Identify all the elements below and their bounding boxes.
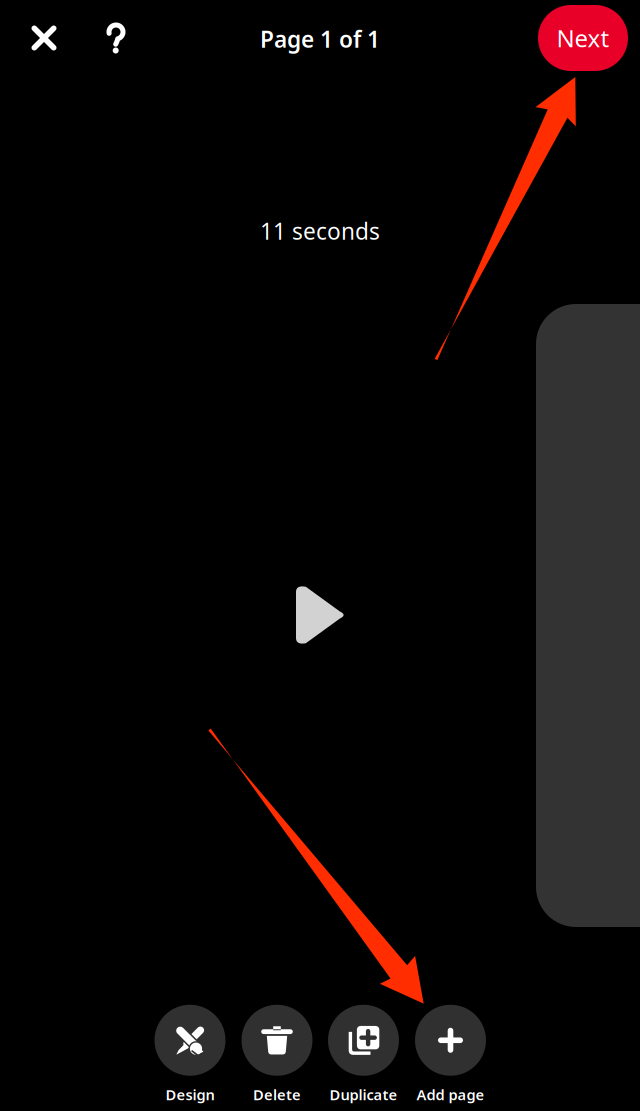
button[interactable]: Add page	[415, 1005, 486, 1104]
staticText: Page 1 of 1	[260, 24, 380, 54]
staticText: Duplicate	[329, 1085, 397, 1104]
staticText: Design	[165, 1085, 214, 1104]
button[interactable]: Duplicate	[328, 1005, 399, 1104]
staticText: Next	[556, 22, 609, 54]
staticText: 11 seconds	[260, 216, 380, 246]
staticText: Add page	[416, 1085, 484, 1104]
button[interactable]: Close	[13, 7, 75, 69]
staticText: Delete	[253, 1085, 301, 1104]
button[interactable]: Delete	[241, 1005, 312, 1104]
button[interactable]: Help	[85, 7, 147, 69]
button[interactable]: Next	[538, 5, 628, 71]
button[interactable]: Design	[154, 1005, 225, 1104]
